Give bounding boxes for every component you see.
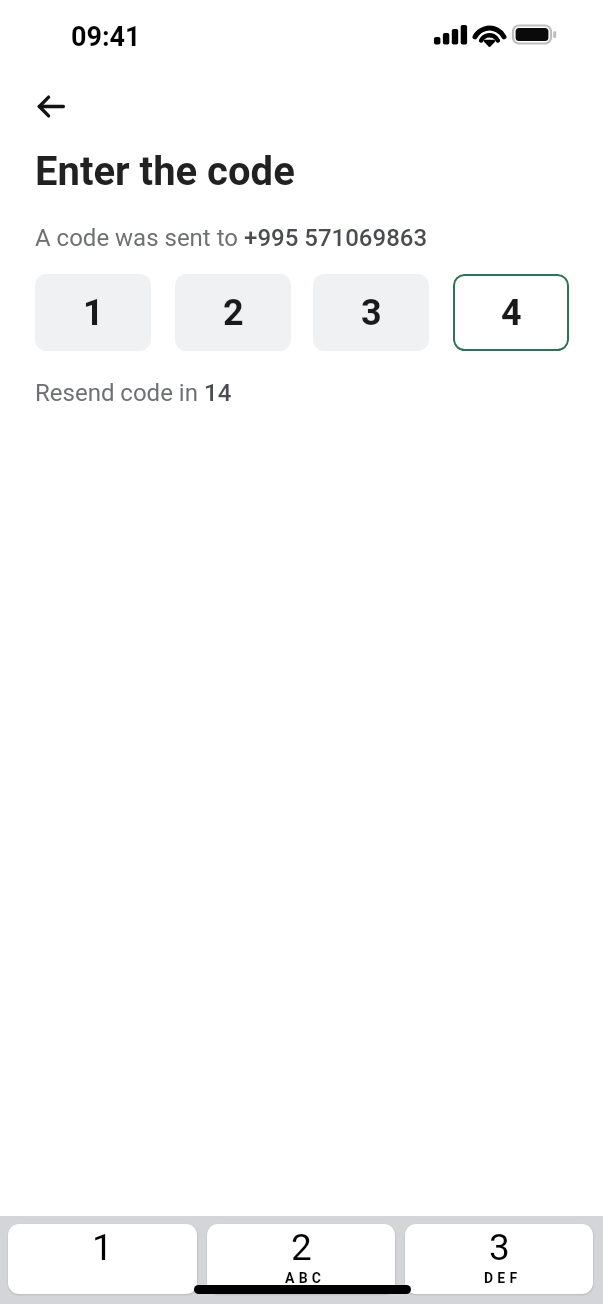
button[interactable]: 2 (175, 274, 291, 351)
button[interactable]: 2 (207, 1224, 395, 1294)
staticText: +995 571069863 (244, 224, 428, 252)
staticText: Enter the code (35, 148, 295, 195)
button[interactable]: 1 (8, 1224, 197, 1294)
staticText: 14 (204, 379, 232, 407)
staticText: Resend code in (35, 379, 204, 407)
button[interactable]: 4 (453, 274, 569, 351)
staticText: DEF (484, 1270, 522, 1286)
staticText: 1 (92, 1226, 113, 1269)
staticText: 3 (361, 292, 382, 334)
staticText: ABC (285, 1270, 326, 1286)
staticText: 2 (223, 292, 244, 334)
staticText: 3 (489, 1226, 510, 1269)
button[interactable]: 3 (313, 274, 429, 351)
button[interactable]: 3 (405, 1224, 593, 1294)
button[interactable]: Back (27, 82, 75, 130)
staticText: 1 (83, 292, 104, 334)
staticText: 4 (501, 292, 522, 334)
staticText: 09:41 (71, 21, 141, 53)
button[interactable]: 1 (35, 274, 151, 351)
staticText: A code was sent to (35, 224, 244, 252)
staticText: 2 (291, 1226, 312, 1269)
